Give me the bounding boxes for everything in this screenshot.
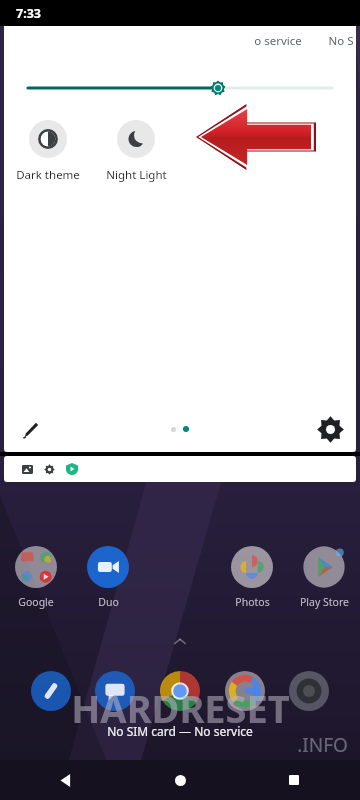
button[interactable]: Duo	[72, 545, 144, 609]
button[interactable]	[28, 76, 332, 100]
button[interactable]: App	[223, 669, 267, 713]
staticText: Google	[18, 595, 54, 609]
button[interactable]: App	[93, 669, 137, 713]
button[interactable]: Google	[0, 545, 72, 609]
button[interactable]: Edit tiles	[12, 411, 48, 447]
button[interactable]: Photos	[216, 545, 288, 609]
staticText: No SIM card — No service	[107, 723, 253, 739]
staticText: Night Light	[106, 167, 167, 183]
button[interactable]: Recent apps	[274, 760, 314, 800]
staticText: HARDRESET	[71, 682, 290, 734]
staticText: Dark theme	[16, 167, 80, 183]
button[interactable]: Home	[160, 760, 200, 800]
button[interactable]: Settings	[312, 411, 348, 447]
staticText: o service	[254, 33, 302, 49]
button[interactable]	[4, 456, 356, 482]
staticText: 7:33	[16, 5, 41, 22]
staticText: Photos	[235, 595, 270, 609]
staticText: Play Store	[300, 595, 349, 609]
staticText: Duo	[98, 595, 119, 609]
button[interactable]: App	[287, 669, 331, 713]
button[interactable]: Back	[46, 760, 86, 800]
button[interactable]: App	[158, 669, 202, 713]
button[interactable]: Play Store	[288, 545, 360, 609]
staticText: .INFO	[297, 732, 348, 758]
staticText: No S	[328, 33, 354, 49]
button[interactable]: Night Light	[92, 118, 180, 183]
button[interactable]: Dark theme	[4, 118, 92, 183]
button[interactable]: App	[29, 669, 73, 713]
